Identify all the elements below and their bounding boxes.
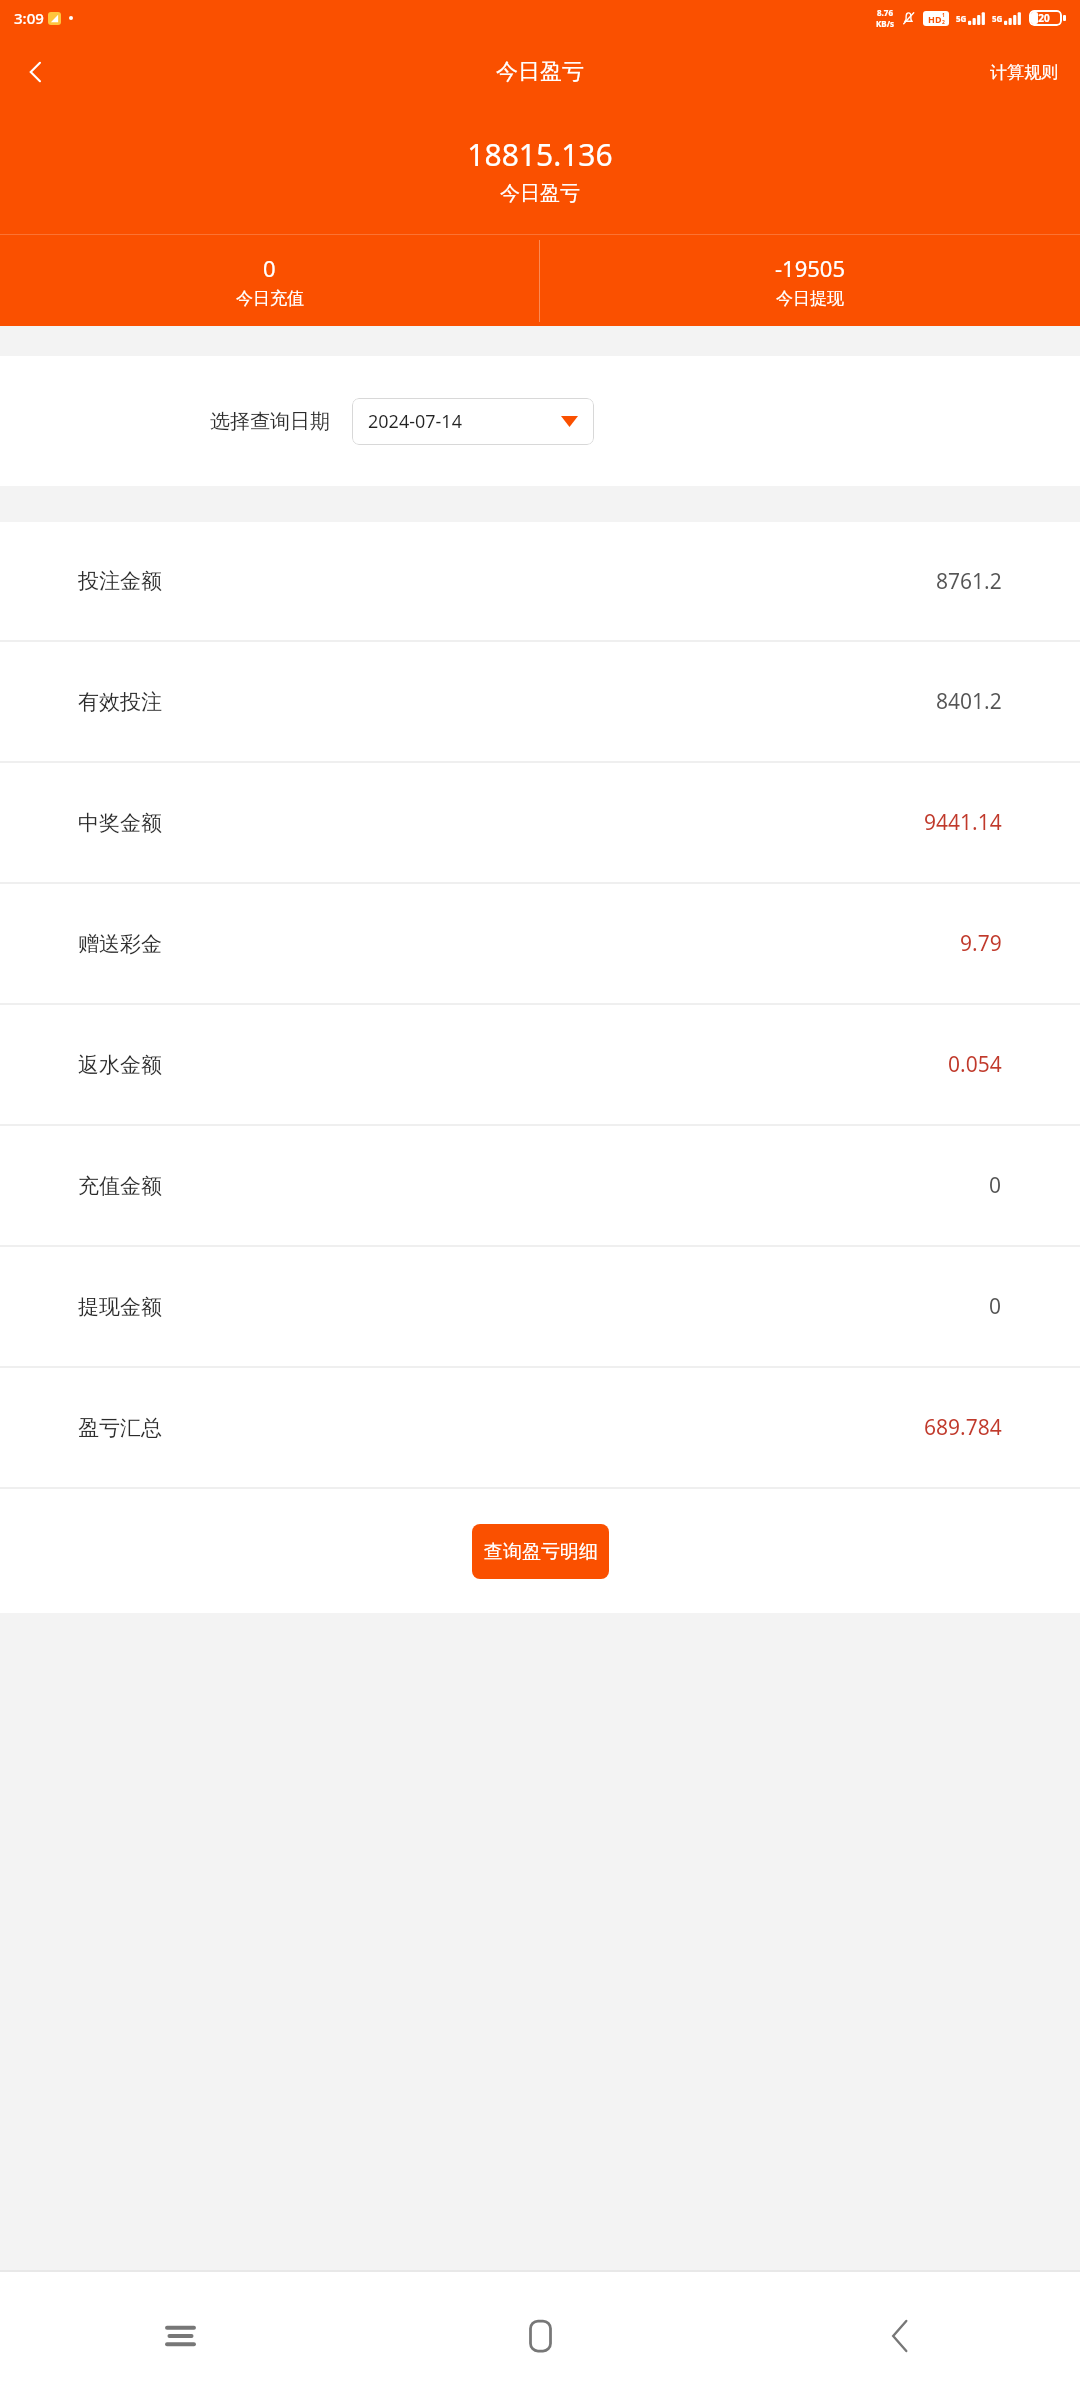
staticText: 有效投注	[78, 689, 162, 715]
staticText: 18815.136	[0, 134, 1080, 175]
staticText: KB/s	[876, 18, 894, 29]
staticText: 盈亏汇总	[78, 1415, 162, 1441]
staticText: 2024-07-14	[368, 409, 462, 434]
staticText: 充值金额	[78, 1173, 162, 1199]
staticText: 0	[263, 253, 276, 283]
staticText: 今日提现	[776, 288, 844, 309]
staticText: 5G	[956, 13, 967, 24]
staticText: 0	[989, 1171, 1002, 1200]
staticText: 3:09	[14, 8, 44, 28]
staticText: 2	[942, 19, 945, 26]
button[interactable]: 有效投注	[0, 642, 1080, 761]
staticText: -19505	[775, 253, 846, 283]
button[interactable]: 赠送彩金	[0, 884, 1080, 1003]
staticText: 今日盈亏	[496, 58, 584, 86]
staticText: 赠送彩金	[78, 931, 162, 957]
staticText: 689.784	[924, 1413, 1002, 1442]
button[interactable]: 计算规则	[968, 50, 1080, 95]
button[interactable]: 充值金额	[0, 1126, 1080, 1245]
button[interactable]: Home	[360, 2272, 720, 2400]
staticText: 5G	[992, 13, 1003, 24]
button[interactable]: 投注金额	[0, 522, 1080, 640]
staticText: 8761.2	[936, 567, 1002, 596]
button[interactable]: 查询盈亏明细	[472, 1524, 609, 1579]
button[interactable]: 2024-07-14	[352, 398, 594, 445]
button[interactable]: -19505	[540, 235, 1080, 326]
button[interactable]: Back	[720, 2272, 1080, 2400]
staticText: 0	[989, 1292, 1002, 1321]
button[interactable]: 提现金额	[0, 1247, 1080, 1366]
staticText: 投注金额	[78, 568, 162, 594]
staticText: 中奖金额	[78, 810, 162, 836]
staticText: 8401.2	[936, 687, 1002, 716]
staticText: HD	[928, 13, 942, 25]
staticText: 0.054	[948, 1050, 1002, 1079]
button[interactable]: Recents	[0, 2272, 360, 2400]
staticText: 9.79	[960, 929, 1002, 958]
staticText: 提现金额	[78, 1294, 162, 1320]
staticText: 20	[1029, 11, 1059, 25]
staticText: 今日充值	[236, 288, 304, 309]
staticText: 计算规则	[990, 62, 1058, 83]
button[interactable]: Back	[8, 44, 64, 100]
button[interactable]: 返水金额	[0, 1005, 1080, 1124]
staticText: 今日盈亏	[0, 181, 1080, 206]
staticText: 查询盈亏明细	[484, 1540, 598, 1564]
staticText: 8.76	[877, 7, 893, 18]
staticText: 返水金额	[78, 1052, 162, 1078]
button[interactable]: 盈亏汇总	[0, 1368, 1080, 1487]
button[interactable]: 中奖金额	[0, 763, 1080, 882]
staticText: 9441.14	[924, 808, 1002, 837]
staticText: 选择查询日期	[210, 409, 330, 434]
button[interactable]: 0	[0, 235, 539, 326]
staticText: 1	[942, 12, 945, 19]
